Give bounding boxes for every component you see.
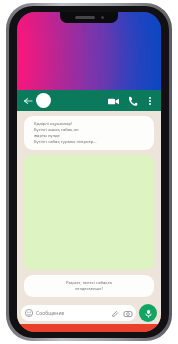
button[interactable]: Video call xyxy=(105,93,121,109)
button[interactable]: Record voice message xyxy=(139,304,157,322)
button[interactable]: Сообщение xyxy=(21,305,136,321)
staticText: Бүгінгі сабақ туралы пікірлер… xyxy=(34,139,97,145)
staticText: Қадірлі оқушылар! xyxy=(34,121,73,127)
button[interactable]: Contact avatar xyxy=(36,93,51,108)
button[interactable]: Қадірлі оқушылар! xyxy=(24,116,154,150)
button[interactable]: Camera xyxy=(123,309,132,318)
button[interactable]: Voice call xyxy=(125,93,141,109)
button[interactable]: More options xyxy=(144,95,156,107)
staticText: жарты күнде xyxy=(34,133,60,139)
button[interactable]: Рақмет, келесі сабақта xyxy=(24,275,154,297)
staticText: Бүгінгі ашық сабақ он xyxy=(34,127,79,133)
staticText: Сообщение xyxy=(36,310,65,317)
button[interactable]: Back xyxy=(22,95,34,107)
staticText: Рақмет, келесі сабақта xyxy=(66,280,112,286)
staticText: кездескенше! xyxy=(75,286,103,292)
button[interactable]: Attach xyxy=(110,309,119,318)
